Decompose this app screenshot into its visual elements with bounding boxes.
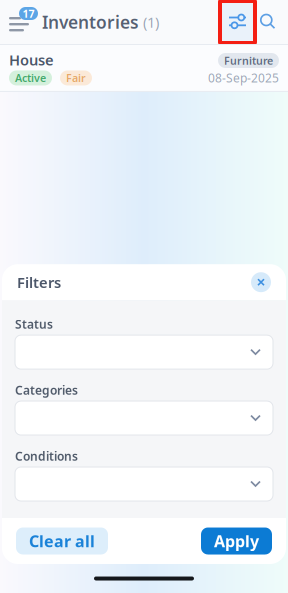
staticText: Furniture (224, 53, 273, 68)
staticText: 08-Sep-2025 (208, 70, 279, 86)
staticText: Categories (15, 382, 78, 398)
staticText: Filters (17, 272, 61, 292)
button[interactable]: House (0, 44, 288, 92)
staticText: Conditions (15, 448, 78, 464)
button[interactable]: Filter (220, 1, 255, 43)
button[interactable]: Menu (2, 5, 36, 39)
staticText: Fair (66, 71, 86, 85)
staticText: Active (15, 71, 46, 85)
staticText: Apply (214, 530, 259, 552)
button[interactable]: Apply (201, 527, 272, 554)
button[interactable]: Search (255, 2, 281, 42)
staticText: House (9, 50, 54, 69)
staticText: Inventories (42, 10, 139, 33)
staticText: (1) (139, 12, 159, 32)
button[interactable]: Clear all (16, 527, 108, 554)
staticText: 17 (22, 6, 34, 21)
staticText: Status (15, 316, 53, 332)
button[interactable]: Close (251, 272, 271, 292)
staticText: Clear all (29, 530, 95, 552)
